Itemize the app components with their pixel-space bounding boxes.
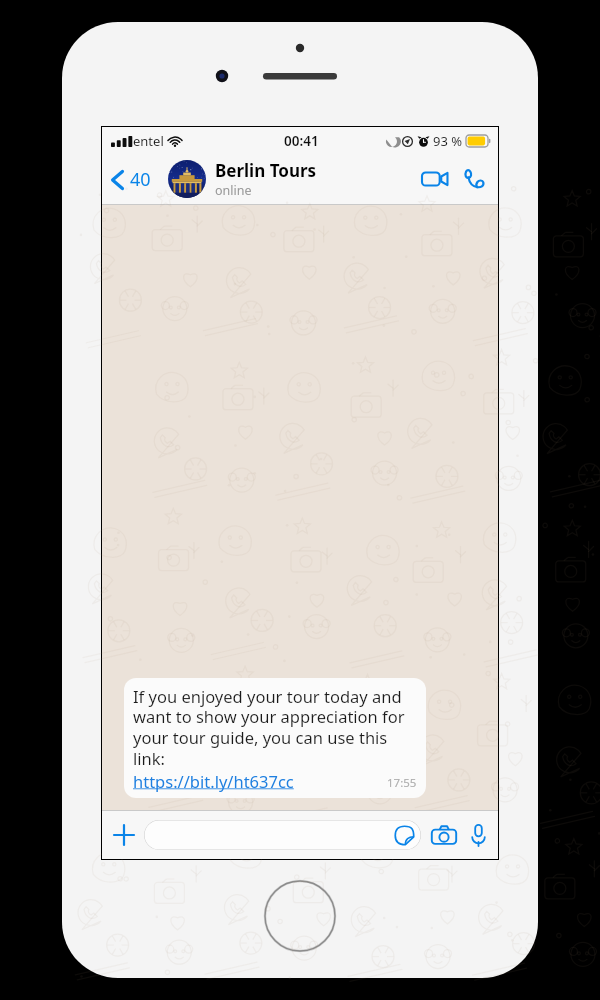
button[interactable]: Voice call <box>457 159 498 200</box>
staticText: 93 % <box>433 132 463 150</box>
button[interactable]: Berlin Tours <box>168 156 413 202</box>
staticText: 00:41 <box>284 132 319 150</box>
staticText: entel <box>133 132 164 150</box>
button[interactable]: Attach <box>102 815 144 855</box>
button[interactable]: Stickers <box>394 825 415 846</box>
button[interactable]: Video call <box>413 160 457 198</box>
staticText: 17:55 <box>387 775 417 791</box>
staticText: If you enjoyed your tour today and want … <box>133 685 417 770</box>
staticText: online <box>215 182 252 199</box>
staticText: 40 <box>130 167 151 192</box>
button[interactable]: Camera <box>421 817 467 854</box>
staticText: https://bit.ly/ht637cc <box>133 770 294 792</box>
button[interactable]: Stickers <box>144 820 421 850</box>
staticText: Berlin Tours <box>215 159 317 182</box>
button[interactable]: Voice message <box>467 816 498 855</box>
button[interactable]: If you enjoyed your tour today and want … <box>124 678 426 798</box>
button[interactable]: Back, 40 unread chats <box>102 161 157 198</box>
